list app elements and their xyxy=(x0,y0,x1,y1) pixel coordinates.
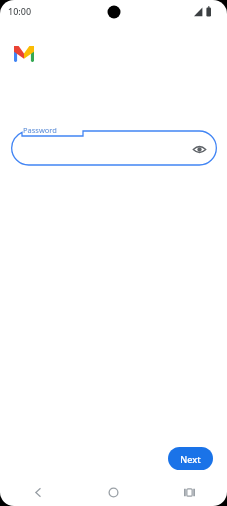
staticText: Password xyxy=(23,125,57,135)
button[interactable]: Recent apps xyxy=(151,478,227,506)
staticText: 10:00 xyxy=(8,5,32,17)
button[interactable]: Password xyxy=(11,125,217,170)
button[interactable]: Back xyxy=(0,478,76,506)
button[interactable]: Home xyxy=(76,478,151,506)
staticText: Next xyxy=(180,453,201,465)
button[interactable]: Show password xyxy=(189,139,209,159)
button[interactable]: Next xyxy=(168,447,213,470)
